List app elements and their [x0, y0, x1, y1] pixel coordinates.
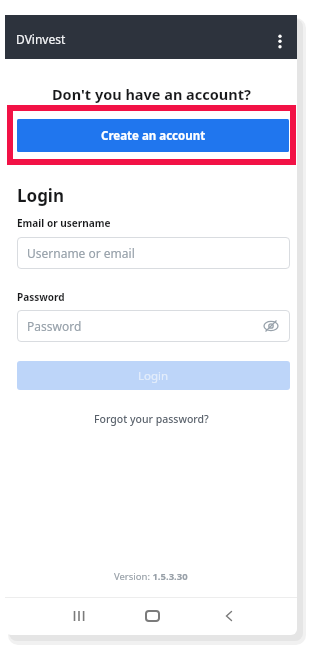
staticText: Username or email [27, 245, 135, 261]
button[interactable] [145, 610, 160, 622]
staticText: Password [17, 290, 65, 304]
button[interactable]: Create an account [17, 119, 289, 152]
staticText: Don't you have an account? [52, 84, 251, 104]
button[interactable]: Forgot your password? [5, 412, 297, 426]
button[interactable]: Password [17, 310, 290, 342]
staticText: Password [27, 318, 82, 334]
button[interactable]: Login [17, 361, 290, 390]
button[interactable] [273, 31, 287, 57]
button[interactable] [220, 606, 236, 626]
staticText: Forgot your password? [94, 412, 209, 426]
button[interactable]: Username or email [17, 237, 290, 269]
staticText: Email or username [17, 216, 111, 230]
staticText: Login [17, 184, 65, 207]
button[interactable] [68, 606, 90, 626]
staticText: Version: 1.5.3.30 [114, 570, 188, 583]
staticText: Login [138, 368, 169, 384]
staticText: Create an account [101, 128, 206, 144]
staticText: DVinvest [16, 31, 66, 47]
